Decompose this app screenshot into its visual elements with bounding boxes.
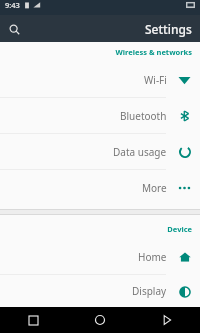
staticText: Wi-Fi bbox=[144, 73, 167, 87]
button[interactable]: Home bbox=[66, 307, 133, 333]
staticText: More bbox=[142, 181, 167, 195]
staticText: Device bbox=[167, 224, 192, 234]
button[interactable]: Data usage bbox=[0, 134, 200, 169]
staticText: 9:43 bbox=[5, 0, 20, 10]
staticText: Bluetooth bbox=[120, 109, 167, 123]
button[interactable]: More bbox=[0, 170, 200, 205]
button[interactable]: Recent apps bbox=[0, 307, 66, 333]
staticText: Data usage bbox=[113, 145, 167, 159]
button[interactable]: Wi-Fi bbox=[0, 62, 200, 97]
button[interactable]: Search bbox=[5, 20, 23, 38]
staticText: Wireless & networks bbox=[115, 47, 192, 57]
button[interactable]: Home bbox=[0, 239, 200, 274]
button[interactable]: Display bbox=[0, 275, 200, 307]
staticText: Home bbox=[138, 250, 167, 264]
staticText: Settings bbox=[145, 21, 192, 37]
button[interactable]: Bluetooth bbox=[0, 98, 200, 133]
button[interactable]: Back bbox=[133, 307, 200, 333]
staticText: Display bbox=[132, 284, 167, 298]
